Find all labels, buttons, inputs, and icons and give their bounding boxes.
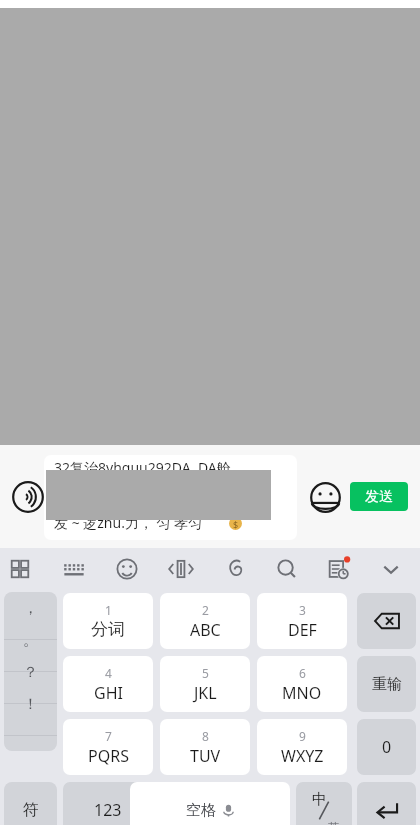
staticText: 6 [299, 665, 306, 681]
staticText: ， [23, 599, 38, 618]
button[interactable]: Emoji [108, 550, 146, 588]
button[interactable]: 空格 [130, 782, 290, 825]
staticText: TUV [190, 745, 221, 767]
staticText: 123 [94, 799, 122, 821]
button[interactable]: 4 [63, 656, 153, 712]
staticText: WXYZ [281, 745, 324, 767]
button[interactable]: ？ [4, 656, 57, 688]
button[interactable]: Voice input [6, 475, 50, 519]
button[interactable]: 123 [63, 782, 153, 825]
button[interactable]: 32复治8yhguu292DA DA舱 [44, 455, 297, 540]
button[interactable]: ， [4, 592, 57, 624]
staticText: 空格 [186, 801, 216, 820]
button[interactable]: Apps [1, 550, 39, 588]
staticText: MNO [282, 682, 322, 704]
button[interactable]: Cursor control [162, 550, 200, 588]
button[interactable]: 2 [160, 593, 250, 649]
staticText: 。 [23, 631, 38, 650]
staticText: ！ [23, 695, 38, 714]
staticText: GHI [94, 682, 123, 704]
button[interactable]: Search [268, 550, 306, 588]
staticText: 重输 [372, 675, 402, 694]
staticText: PQRS [88, 745, 129, 767]
staticText: 发送 [365, 488, 393, 506]
button[interactable]: 7 [63, 719, 153, 775]
staticText: 符 [23, 800, 39, 820]
staticText: 7 [105, 728, 112, 744]
staticText: $ [233, 518, 239, 530]
button[interactable]: 。 [4, 624, 57, 656]
button[interactable]: 8 [160, 719, 250, 775]
staticText: 0 [382, 736, 392, 758]
button[interactable]: 1 [63, 593, 153, 649]
button[interactable]: Hide keyboard [372, 550, 410, 588]
staticText: 英 [328, 820, 339, 825]
button[interactable]: Emoji [303, 475, 347, 519]
staticText: 32复治8yhguu292DA DA舱 [54, 458, 231, 477]
staticText: 2 [202, 602, 209, 618]
button[interactable]: Enter [357, 782, 416, 825]
staticText: 中 [312, 790, 327, 809]
button[interactable]: 6 [257, 656, 347, 712]
staticText: 分词 [91, 619, 125, 640]
staticText: 9 [299, 728, 306, 744]
button[interactable]: 中 [296, 782, 352, 825]
button[interactable]: 5 [160, 656, 250, 712]
staticText: 1 [105, 602, 112, 618]
button[interactable]: 0 [357, 719, 416, 775]
button[interactable]: 符 [4, 782, 57, 825]
button[interactable]: Backspace [357, 593, 416, 649]
staticText: DEF [288, 619, 317, 641]
staticText: 8 [202, 728, 209, 744]
button[interactable]: 3 [257, 593, 347, 649]
button[interactable]: 重输 [357, 656, 416, 712]
staticText: JKL [194, 682, 217, 704]
button[interactable]: Keyboard layout [55, 550, 93, 588]
staticText: 5 [202, 665, 209, 681]
button[interactable] [4, 720, 57, 751]
staticText: 3 [299, 602, 306, 618]
button[interactable]: Clipboard attach [215, 550, 253, 588]
button[interactable]: 9 [257, 719, 347, 775]
staticText: 4 [105, 665, 112, 681]
button[interactable]: ！ [4, 688, 57, 720]
staticText: ABC [190, 619, 221, 641]
button[interactable]: 发送 [350, 482, 408, 511]
staticText: 发 ~ 逻zhu.力， 匀 孝匀 [54, 513, 203, 532]
button[interactable]: Clipboard history [319, 550, 357, 588]
staticText: ？ [23, 663, 38, 682]
